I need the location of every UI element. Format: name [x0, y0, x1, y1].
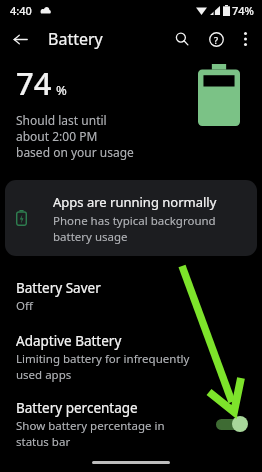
button[interactable]: Search: [168, 25, 196, 53]
staticText: Should last until about 2:00 PM based on…: [16, 112, 134, 160]
staticText: Phone has typical background battery usa…: [53, 213, 216, 244]
staticText: 74: [16, 62, 52, 104]
staticText: ?: [214, 34, 219, 46]
staticText: 74%: [232, 3, 254, 18]
staticText: Battery: [48, 28, 103, 50]
staticText: Apps are running normally: [53, 193, 217, 211]
button[interactable]: Adaptive Battery: [0, 323, 262, 391]
button[interactable]: More options: [232, 26, 258, 52]
button[interactable]: Battery Saver: [0, 270, 262, 323]
staticText: Limiting battery for infrequently used a…: [16, 351, 190, 382]
button[interactable]: Battery percentage: [0, 391, 262, 457]
staticText: %: [56, 81, 67, 99]
staticText: 4:40: [10, 3, 32, 18]
staticText: Adaptive Battery: [16, 332, 122, 350]
staticText: Battery Saver: [16, 279, 101, 297]
other: Battery percentage toggle: [216, 416, 250, 432]
button[interactable]: Help: [202, 25, 230, 53]
staticText: Off: [16, 298, 33, 314]
button[interactable]: Apps are running normally: [5, 180, 257, 256]
staticText: Show battery percentage in status bar: [16, 418, 165, 449]
button[interactable]: Back: [6, 25, 34, 53]
staticText: Battery percentage: [16, 399, 138, 417]
